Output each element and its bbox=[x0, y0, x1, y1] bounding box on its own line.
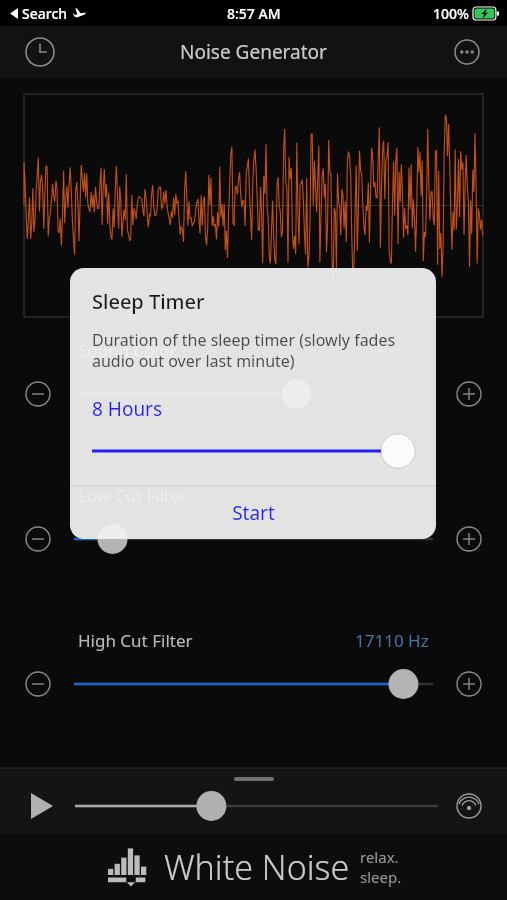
button[interactable]: Decrease Sound Color bbox=[20, 376, 56, 412]
staticText: 0 Hz bbox=[394, 484, 429, 507]
button[interactable] bbox=[92, 434, 414, 468]
button[interactable]: Sleep timer bbox=[18, 30, 62, 74]
staticText: Brown bbox=[377, 339, 429, 362]
button[interactable]: Increase Low Cut Filter bbox=[451, 521, 487, 557]
staticText: Sound Color bbox=[78, 339, 177, 362]
staticText: High Cut Filter bbox=[78, 629, 193, 652]
staticText: Duration of the sleep timer (slowly fade… bbox=[92, 329, 414, 372]
staticText: Low Cut Filter bbox=[78, 484, 187, 507]
staticText: Search bbox=[22, 4, 68, 23]
button[interactable]: Decrease Low Cut Filter bbox=[20, 521, 56, 557]
button[interactable] bbox=[75, 376, 432, 412]
staticText: Sleep Timer bbox=[92, 288, 205, 315]
button[interactable] bbox=[76, 788, 437, 824]
staticText: 8:57 AM bbox=[227, 4, 281, 23]
staticText: Start bbox=[232, 500, 275, 526]
button[interactable]: Increase High Cut Filter bbox=[451, 666, 487, 702]
button[interactable] bbox=[75, 521, 432, 557]
button[interactable]: AirPlay bbox=[449, 786, 489, 826]
button[interactable] bbox=[75, 666, 432, 702]
staticText: 8 Hours bbox=[92, 396, 163, 422]
staticText: sleep. bbox=[360, 867, 402, 887]
staticText: White Noise bbox=[164, 844, 350, 890]
button[interactable]: Increase Sound Color bbox=[451, 376, 487, 412]
button[interactable]: Play bbox=[20, 784, 64, 828]
staticText: relax. bbox=[360, 847, 399, 867]
staticText: 100% bbox=[433, 4, 469, 23]
button[interactable]: Start bbox=[70, 487, 436, 539]
button[interactable]: Decrease High Cut Filter bbox=[20, 666, 56, 702]
button[interactable]: More options bbox=[445, 30, 489, 74]
staticText: Noise Generator bbox=[180, 39, 327, 65]
staticText: 17110 Hz bbox=[355, 629, 429, 652]
